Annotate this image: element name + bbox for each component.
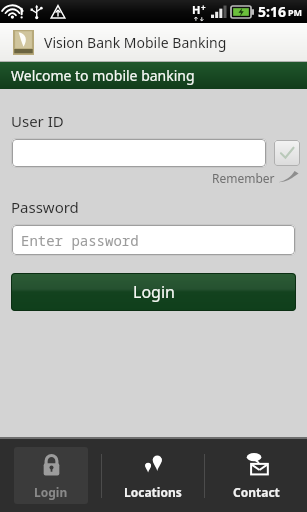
staticText: Enter password bbox=[21, 231, 139, 250]
staticText: Login bbox=[34, 484, 68, 500]
button[interactable]: Login bbox=[0, 439, 101, 512]
staticText: Password bbox=[11, 197, 79, 217]
other: Contact bbox=[243, 452, 270, 479]
button[interactable]: Enter password bbox=[12, 225, 295, 255]
button[interactable]: Contact bbox=[205, 439, 307, 512]
other: Locations bbox=[140, 452, 167, 479]
staticText: Locations bbox=[124, 484, 182, 500]
staticText: User ID bbox=[11, 111, 64, 131]
staticText: 5:16 bbox=[258, 2, 286, 21]
button[interactable] bbox=[12, 139, 266, 167]
staticText: Vision Bank Mobile Banking bbox=[44, 33, 227, 52]
staticText: Remember bbox=[212, 170, 275, 186]
button[interactable]: Locations bbox=[102, 439, 204, 512]
staticText: H bbox=[192, 2, 201, 17]
button[interactable]: Login bbox=[11, 273, 296, 311]
button[interactable]: Remember user ID bbox=[274, 140, 300, 166]
staticText: + bbox=[201, 2, 206, 13]
staticText: Login bbox=[133, 281, 175, 303]
other: Login bbox=[38, 452, 65, 479]
staticText: Contact bbox=[233, 484, 280, 500]
staticText: PM bbox=[288, 6, 303, 18]
staticText: Welcome to mobile banking bbox=[11, 66, 195, 85]
